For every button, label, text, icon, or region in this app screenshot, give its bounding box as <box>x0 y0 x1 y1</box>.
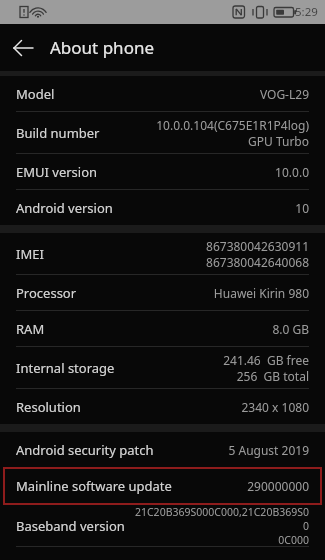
staticText: 10.0.0.104(C675E1R1P4log) <box>156 117 309 133</box>
staticText: IMEI <box>16 245 44 263</box>
button[interactable]: IMEI <box>0 233 325 274</box>
staticText: 0C000 <box>278 533 309 546</box>
staticText: 256 GB total <box>236 368 309 384</box>
staticText: EMUI version <box>16 163 98 181</box>
staticText: 8.0 GB <box>272 321 309 337</box>
button[interactable]: Model <box>0 76 325 111</box>
staticText: 2340 x 1080 <box>241 399 309 415</box>
button[interactable]: Processor <box>0 275 325 310</box>
staticText: 5 August 2019 <box>228 442 309 458</box>
staticText: Android version <box>16 199 113 217</box>
button[interactable]: EMUI version <box>0 154 325 189</box>
staticText: Build number <box>16 124 100 142</box>
button[interactable]: Internal storage <box>0 347 325 388</box>
staticText: Model <box>16 85 55 103</box>
button[interactable]: RAM <box>0 311 325 346</box>
staticText: 867380042640068 <box>206 254 309 270</box>
staticText: Processor <box>16 284 77 302</box>
staticText: 867380042630911 <box>206 238 309 254</box>
staticText: RAM <box>16 320 45 338</box>
staticText: 10.0.0 <box>275 164 309 180</box>
staticText: Resolution <box>16 398 81 416</box>
staticText: VOG-L29 <box>259 86 309 102</box>
staticText: Huawei Kirin 980 <box>213 285 309 301</box>
staticText: 5:29 <box>295 4 318 20</box>
staticText: 290000000 <box>247 478 309 494</box>
button[interactable]: Baseband version <box>0 505 325 546</box>
staticText: Android security patch <box>16 441 154 459</box>
staticText: About phone <box>50 36 155 59</box>
button[interactable]: Resolution <box>0 389 325 424</box>
staticText: Mainline software update <box>16 477 172 495</box>
button[interactable]: Android version <box>0 190 325 225</box>
staticText: 21C20B369S000C000,21C20B369S00 <box>129 505 309 533</box>
staticText: Internal storage <box>16 359 115 377</box>
button[interactable]: Mainline software update <box>3 467 322 505</box>
button[interactable]: Android security patch <box>0 432 325 467</box>
staticText: Baseband version <box>16 517 125 535</box>
staticText: 10 <box>295 200 309 216</box>
staticText: GPU Turbo <box>248 133 309 149</box>
button[interactable]: Build number <box>0 112 325 153</box>
button[interactable]: Back <box>7 30 43 66</box>
staticText: 241.46 GB free <box>223 352 309 368</box>
